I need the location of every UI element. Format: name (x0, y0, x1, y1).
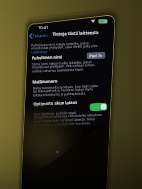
staticText: Näitä tunnisteita tarvitaan, kun haet tu… (33, 83, 103, 97)
staticText: Kun käytössä, puhelin oppii lataustottum… (34, 109, 104, 131)
staticText: Puhelimen nimi näkyy laitteille, joihin … (31, 40, 101, 50)
button[interactable]: Lisätietoja (31, 49, 47, 53)
button[interactable]: Optimoitu akun lataus, päällä (89, 103, 108, 111)
button[interactable]: Takaisin (29, 31, 48, 40)
staticText: Optimoitu akun lataus (33, 100, 77, 106)
button[interactable]: Pixel 7a (86, 52, 106, 59)
button[interactable]: Optimoitu akun lataus (33, 99, 107, 109)
staticText: Takaisin (33, 33, 48, 38)
staticText: Pixel 7a (89, 53, 103, 58)
other: Status icons (90, 18, 109, 25)
staticText: Mallinumero (32, 78, 58, 84)
staticText: Puhelimen nimi (31, 54, 63, 60)
button[interactable]: Puhelimen nimi (31, 53, 106, 62)
button[interactable]: Mallinumero (32, 77, 106, 84)
staticText: Tietoja tästä laitteesta (53, 30, 99, 38)
staticText: Tämä nimi näkyy muille laitteille, joihi… (32, 59, 102, 73)
staticText: 10:41 (38, 25, 49, 30)
